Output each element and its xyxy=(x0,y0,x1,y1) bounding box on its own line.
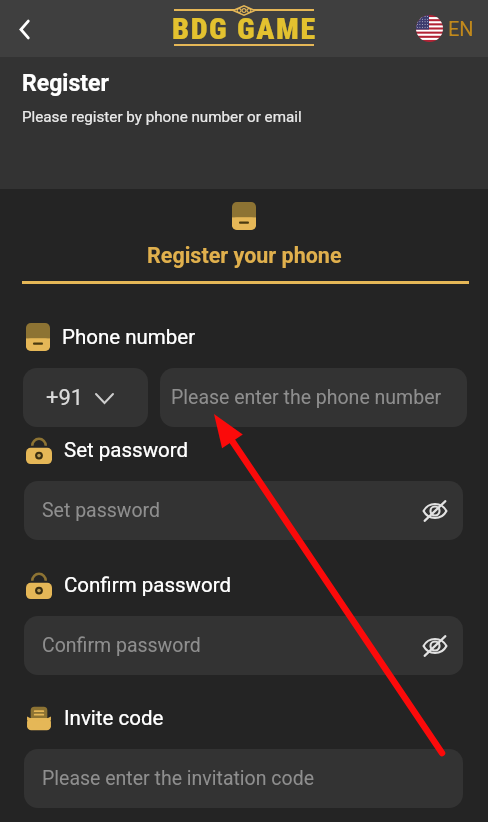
staticText: +91 xyxy=(46,385,84,411)
button[interactable]: Please enter the phone number xyxy=(160,368,467,427)
staticText: Confirm password xyxy=(42,634,201,657)
staticText: Set password xyxy=(64,438,189,462)
staticText: Invite code xyxy=(64,706,164,730)
staticText: EN xyxy=(448,17,474,40)
staticText: Register xyxy=(22,70,109,97)
button[interactable]: Back xyxy=(4,9,44,49)
button[interactable]: Set password xyxy=(24,481,463,540)
button[interactable]: +91 xyxy=(23,368,148,427)
button[interactable]: Show password xyxy=(418,629,452,663)
button[interactable]: Please enter the invitation code xyxy=(24,749,463,808)
staticText: Phone number xyxy=(62,325,196,349)
button[interactable]: Confirm password xyxy=(24,616,463,675)
staticText: BDG GAME xyxy=(172,11,317,46)
staticText: Please enter the invitation code xyxy=(42,767,315,790)
staticText: Confirm password xyxy=(64,573,231,597)
staticText: Please enter the phone number xyxy=(171,386,442,409)
staticText: Set password xyxy=(42,499,161,522)
button[interactable]: Show password xyxy=(418,494,452,528)
button[interactable]: EN xyxy=(416,15,474,42)
staticText: Register your phone xyxy=(147,243,342,268)
staticText: Please register by phone number or email xyxy=(22,108,302,126)
